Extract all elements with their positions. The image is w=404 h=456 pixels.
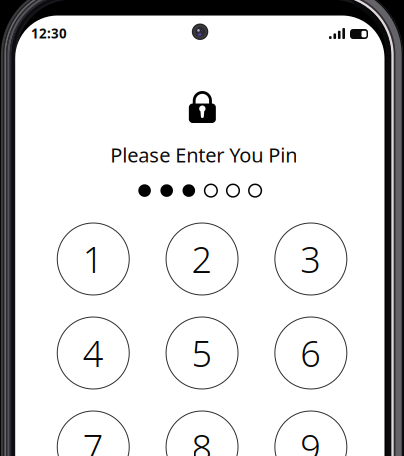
button[interactable]: 7 bbox=[57, 411, 129, 456]
staticText: 9 bbox=[300, 423, 321, 456]
button[interactable]: 4 bbox=[57, 317, 129, 389]
staticText: 7 bbox=[83, 423, 104, 456]
staticText: 6 bbox=[300, 329, 321, 377]
button[interactable]: 12:30 bbox=[31, 24, 67, 42]
button[interactable]: 2 bbox=[166, 223, 238, 295]
staticText: 4 bbox=[83, 329, 104, 377]
staticText: 1 bbox=[83, 235, 104, 283]
button[interactable]: 5 bbox=[166, 317, 238, 389]
staticText: Please Enter You Pin bbox=[110, 141, 297, 168]
staticText: 3 bbox=[300, 235, 321, 283]
button[interactable]: 1 bbox=[57, 223, 129, 295]
staticText: 2 bbox=[191, 235, 212, 283]
staticText: 12:30 bbox=[31, 24, 67, 42]
button[interactable]: 8 bbox=[166, 411, 238, 456]
button[interactable]: 9 bbox=[275, 411, 347, 456]
button[interactable]: 3 bbox=[275, 223, 347, 295]
staticText: 8 bbox=[191, 423, 212, 456]
staticText: 5 bbox=[191, 329, 212, 377]
button[interactable]: 6 bbox=[275, 317, 347, 389]
